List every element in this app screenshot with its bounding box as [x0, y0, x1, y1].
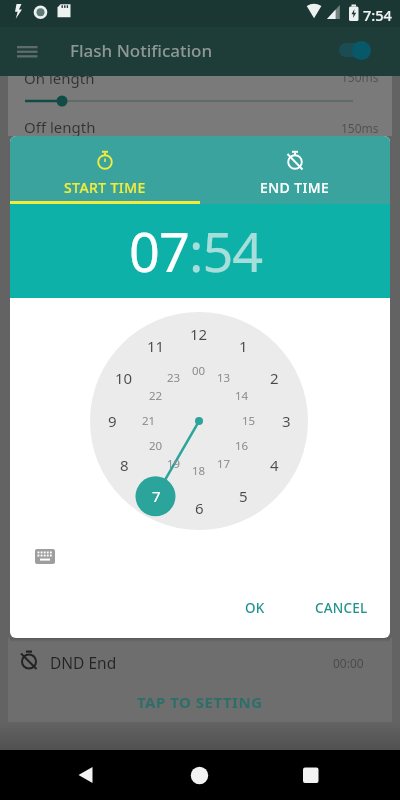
- staticText: 11: [147, 336, 165, 356]
- staticText: 1: [239, 336, 248, 356]
- staticText: Flash Notification: [70, 39, 213, 62]
- staticText: 18: [192, 463, 206, 479]
- staticText: 10: [115, 368, 133, 388]
- button[interactable]: [66, 755, 106, 795]
- staticText: 23: [167, 370, 181, 386]
- staticText: DND End: [50, 652, 117, 673]
- button[interactable]: [290, 755, 330, 795]
- staticText: On length: [24, 68, 95, 88]
- staticText: 13: [217, 370, 231, 386]
- staticText: OK: [245, 599, 265, 617]
- staticText: 2: [270, 368, 279, 388]
- staticText: 16: [235, 438, 249, 454]
- staticText: 5: [239, 486, 248, 506]
- button[interactable]: [180, 755, 220, 795]
- staticText: 3: [282, 411, 291, 431]
- staticText: 6: [195, 498, 204, 518]
- staticText: 07: [129, 214, 189, 288]
- button[interactable]: OK: [235, 598, 275, 618]
- staticText: 19: [167, 456, 181, 472]
- staticText: 150ms: [341, 120, 379, 136]
- staticText: Off length: [24, 117, 96, 137]
- staticText: 17: [217, 456, 231, 472]
- staticText: 22: [149, 388, 163, 404]
- staticText: START TIME: [64, 178, 146, 197]
- staticText: 150ms: [341, 69, 379, 85]
- button[interactable]: END TIME: [200, 136, 390, 204]
- staticText: 15: [242, 413, 256, 429]
- staticText: 8: [120, 455, 129, 475]
- staticText: TAP TO SETTING: [137, 692, 263, 712]
- button[interactable]: CANCEL: [306, 598, 376, 618]
- staticText: CANCEL: [315, 599, 368, 617]
- staticText: 7:54: [363, 5, 392, 25]
- button[interactable]: [0, 27, 56, 76]
- staticText: 21: [142, 413, 156, 429]
- staticText: 00: [192, 363, 206, 379]
- button[interactable]: START TIME: [10, 136, 200, 204]
- button[interactable]: [339, 43, 370, 57]
- staticText: 14: [235, 388, 249, 404]
- staticText: 7: [152, 486, 161, 506]
- staticText: END TIME: [260, 178, 330, 197]
- staticText: 9: [108, 411, 117, 431]
- staticText: 00:00: [333, 655, 364, 671]
- staticText: 12: [190, 324, 208, 344]
- staticText: 4: [270, 455, 279, 475]
- staticText: :54: [189, 214, 263, 288]
- button[interactable]: TAP TO SETTING: [0, 692, 400, 712]
- staticText: 20: [149, 438, 163, 454]
